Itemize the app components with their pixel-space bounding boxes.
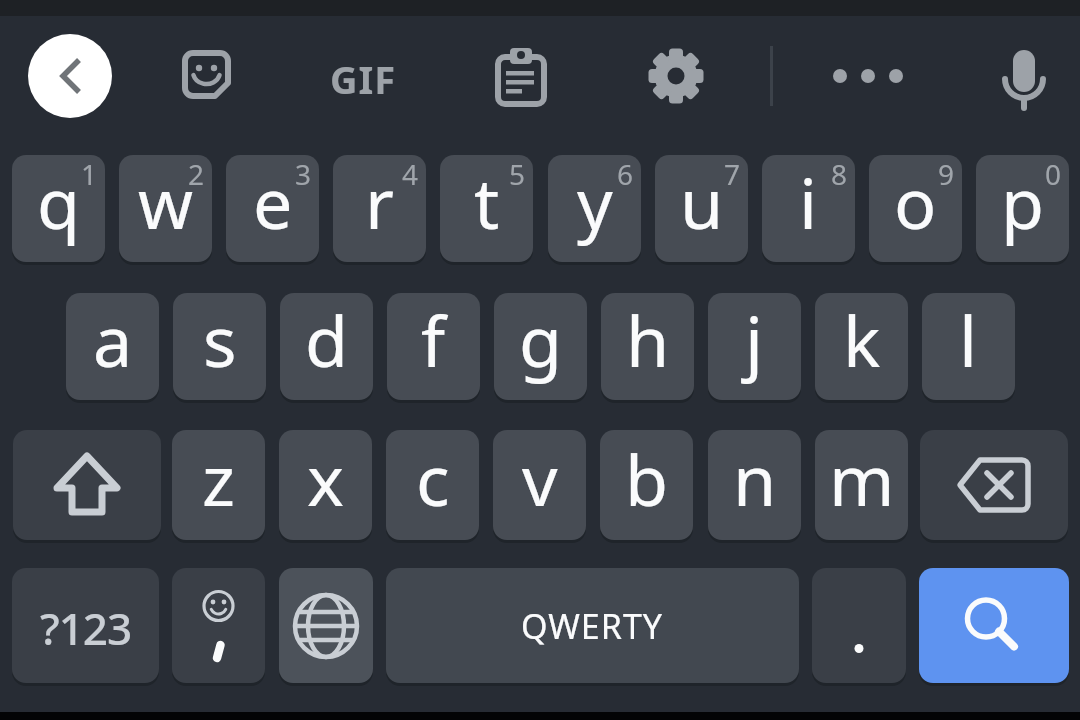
staticText: 3	[295, 155, 312, 193]
button[interactable]: c	[386, 430, 479, 540]
staticText: s	[203, 293, 237, 387]
button[interactable]	[28, 34, 112, 118]
button[interactable]: s	[173, 293, 266, 400]
staticText: c	[416, 431, 450, 526]
button[interactable]: p	[976, 155, 1069, 262]
button[interactable]: m	[815, 430, 908, 540]
button[interactable]: b	[600, 430, 693, 540]
button[interactable]	[182, 50, 234, 102]
staticText: 6	[617, 155, 634, 193]
staticText: 9	[938, 155, 955, 193]
staticText: z	[202, 431, 235, 526]
button[interactable]: ?123	[12, 568, 159, 683]
staticText: ?123	[40, 598, 132, 658]
staticText: 8	[831, 155, 848, 193]
staticText: g	[519, 293, 563, 387]
button[interactable]: QWERTY	[386, 568, 799, 683]
button[interactable]	[812, 568, 906, 683]
staticText: a	[93, 293, 133, 387]
staticText: m	[829, 431, 895, 526]
button[interactable]: y	[548, 155, 641, 262]
button[interactable]: x	[279, 430, 372, 540]
button[interactable]: u	[655, 155, 748, 262]
button[interactable]	[13, 430, 161, 540]
button[interactable]: r	[333, 155, 426, 262]
button[interactable]: q	[12, 155, 105, 262]
staticText: 1	[81, 155, 98, 193]
button[interactable]: k	[815, 293, 908, 400]
staticText: l	[959, 293, 978, 387]
button[interactable]: w	[119, 155, 212, 262]
button[interactable]	[172, 568, 265, 683]
staticText: n	[733, 431, 777, 526]
button[interactable]	[826, 62, 910, 90]
staticText: f	[421, 293, 446, 387]
button[interactable]: l	[922, 293, 1015, 400]
staticText: k	[843, 293, 881, 387]
staticText: o	[894, 155, 937, 249]
staticText: w	[138, 155, 194, 249]
staticText: e	[253, 155, 293, 249]
button[interactable]: n	[708, 430, 801, 540]
button[interactable]	[648, 48, 704, 104]
button[interactable]	[919, 568, 1069, 683]
button[interactable]: h	[601, 293, 694, 400]
button[interactable]: GIF	[330, 53, 397, 105]
staticText: y	[577, 155, 613, 249]
button[interactable]: d	[280, 293, 373, 400]
button[interactable]	[920, 430, 1068, 540]
button[interactable]: v	[493, 430, 586, 540]
staticText: u	[680, 155, 724, 249]
staticText: t	[474, 155, 500, 249]
staticText: 7	[724, 155, 741, 193]
staticText: r	[365, 155, 394, 249]
button[interactable]: f	[387, 293, 480, 400]
staticText: QWERTY	[521, 603, 664, 649]
staticText: i	[799, 155, 818, 249]
staticText: d	[305, 293, 349, 387]
button[interactable]	[996, 44, 1052, 112]
staticText: 2	[188, 155, 205, 193]
staticText: j	[745, 293, 764, 387]
button[interactable]: i	[762, 155, 855, 262]
staticText: x	[307, 431, 345, 526]
button[interactable]: t	[440, 155, 533, 262]
button[interactable]: g	[494, 293, 587, 400]
staticText: 5	[509, 155, 526, 193]
staticText: GIF	[330, 53, 397, 105]
button[interactable]: z	[172, 430, 265, 540]
staticText: p	[1001, 155, 1045, 249]
staticText: b	[625, 431, 669, 526]
button[interactable]: o	[869, 155, 962, 262]
staticText: 4	[402, 155, 419, 193]
staticText: h	[626, 293, 670, 387]
staticText: q	[37, 155, 81, 249]
staticText: 0	[1045, 155, 1062, 193]
button[interactable]: j	[708, 293, 801, 400]
staticText: v	[522, 431, 558, 526]
button[interactable]: a	[66, 293, 159, 400]
button[interactable]: e	[226, 155, 319, 262]
button[interactable]	[494, 46, 548, 108]
button[interactable]	[279, 568, 373, 683]
